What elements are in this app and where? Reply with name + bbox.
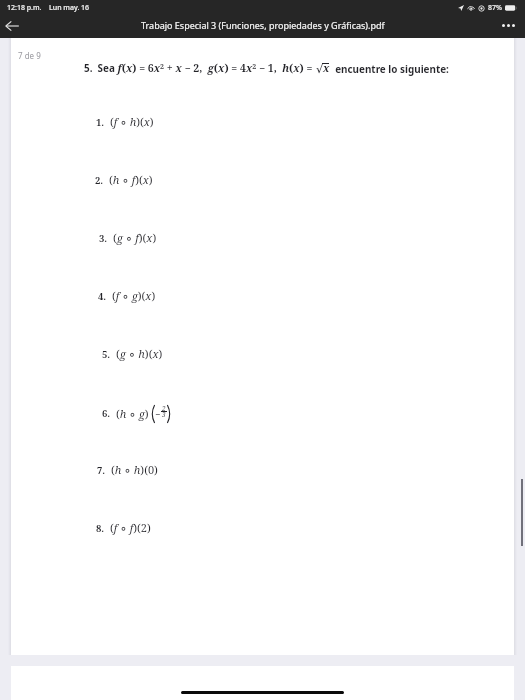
staticText: 2	[162, 404, 166, 413]
button[interactable]: Back	[1, 15, 23, 37]
staticText: 3	[162, 410, 166, 419]
staticText: 87%	[488, 3, 502, 13]
staticText: Trabajo Especial 3 (Funciones, propiedad…	[141, 19, 385, 31]
staticText: 7.	[97, 464, 106, 477]
staticText: (g ∘ h)(x)	[116, 346, 163, 362]
staticText: (g ∘ f)(x)	[113, 230, 157, 246]
button[interactable]: More options	[497, 14, 519, 36]
staticText: 12:18 p.m.	[7, 3, 42, 13]
staticText: 5. Sea f(x) = 6x2 + x − 2, g(x) = 4x2 − …	[84, 61, 316, 75]
staticText: 1.	[96, 116, 105, 129]
staticText: (h ∘ f)(x)	[109, 172, 153, 188]
staticText: 8.	[96, 522, 105, 535]
staticText: x	[323, 61, 330, 75]
staticText: 4.	[98, 290, 107, 303]
staticText: (h ∘ h)(0)	[111, 462, 158, 478]
staticText: 3.	[99, 232, 108, 245]
staticText: Lun may. 16	[49, 3, 90, 13]
staticText: encuentre lo siguiente:	[330, 62, 449, 75]
staticText: 5.	[102, 348, 111, 361]
staticText: (h ∘ g)	[116, 406, 149, 422]
staticText: 6.	[102, 407, 111, 420]
staticText: (f ∘ f)(2)	[110, 520, 151, 536]
staticText: 7 de 9	[18, 50, 41, 61]
staticText: (f ∘ h)(x)	[110, 114, 154, 130]
staticText: √	[316, 63, 323, 75]
staticText: −	[155, 408, 161, 420]
staticText: 2.	[95, 174, 104, 187]
staticText: (f ∘ g)(x)	[112, 288, 156, 304]
